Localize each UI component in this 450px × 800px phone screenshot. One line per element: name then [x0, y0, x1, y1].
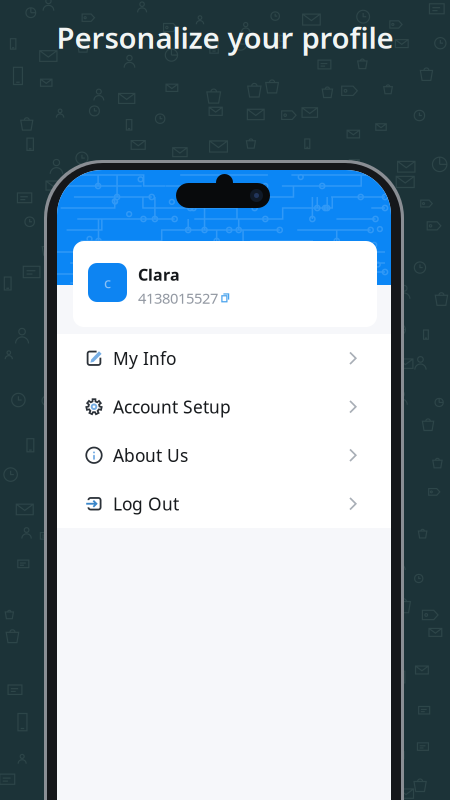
staticText: My Info	[113, 347, 176, 370]
staticText: Personalize your profile	[56, 18, 393, 57]
staticText: c	[104, 273, 111, 292]
staticText: Account Setup	[113, 395, 231, 418]
staticText: Log Out	[113, 492, 179, 515]
button[interactable]: Log Out	[57, 479, 391, 528]
staticText: About Us	[113, 444, 188, 467]
staticText: Clara	[138, 264, 180, 285]
button[interactable]: Account Setup	[57, 382, 391, 431]
button[interactable]: About Us	[57, 431, 391, 479]
button[interactable]: c	[73, 241, 377, 327]
staticText: 4138015527	[138, 288, 218, 308]
button[interactable]: My Info	[57, 334, 391, 382]
